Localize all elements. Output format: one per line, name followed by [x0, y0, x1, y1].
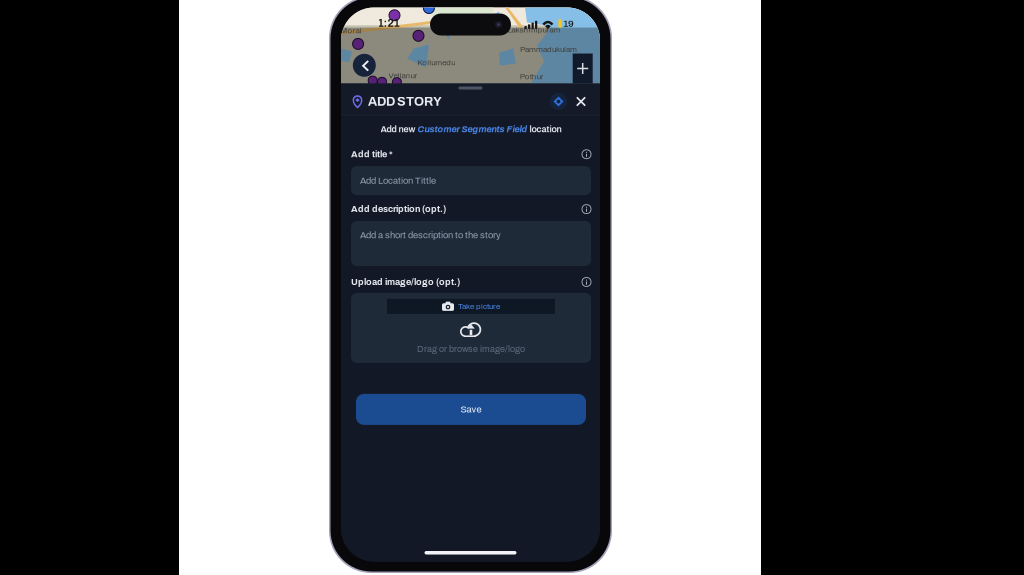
staticText: location [527, 124, 561, 134]
staticText: ADD STORY [368, 95, 442, 108]
button[interactable]: Add a short description to the story [351, 221, 591, 266]
staticText: Drag or browse image/logo [417, 344, 525, 354]
staticText: Add title * [351, 149, 393, 159]
staticText: Take picture [458, 302, 500, 311]
staticText: Add new [380, 124, 417, 134]
staticText: Pothur [520, 72, 544, 81]
button[interactable]: Take picture [387, 299, 555, 314]
staticText: Add Location Tittle [360, 176, 436, 186]
staticText: Kollumedu [417, 58, 455, 67]
button[interactable]: Close [573, 93, 589, 109]
staticText: Vellanur [389, 71, 418, 80]
staticText: 19 [563, 18, 574, 29]
staticText: Pammadukulam [520, 45, 577, 54]
staticText: Add a short description to the story [360, 230, 501, 240]
button[interactable]: Add location [573, 53, 593, 83]
button[interactable]: Locate me [549, 92, 568, 111]
staticText: Lakshmipuram [507, 25, 560, 34]
staticText: Save [460, 404, 481, 414]
staticText: Morai [341, 26, 362, 35]
button[interactable]: Add Location Tittle [351, 166, 591, 195]
staticText: Add description (opt.) [351, 204, 446, 214]
button[interactable]: Save [356, 394, 586, 425]
staticText: Upload image/logo (opt.) [351, 277, 460, 287]
staticText: 1:21 [377, 17, 399, 29]
button[interactable]: Back [353, 54, 376, 77]
staticText: Customer Segments Field [417, 124, 527, 134]
